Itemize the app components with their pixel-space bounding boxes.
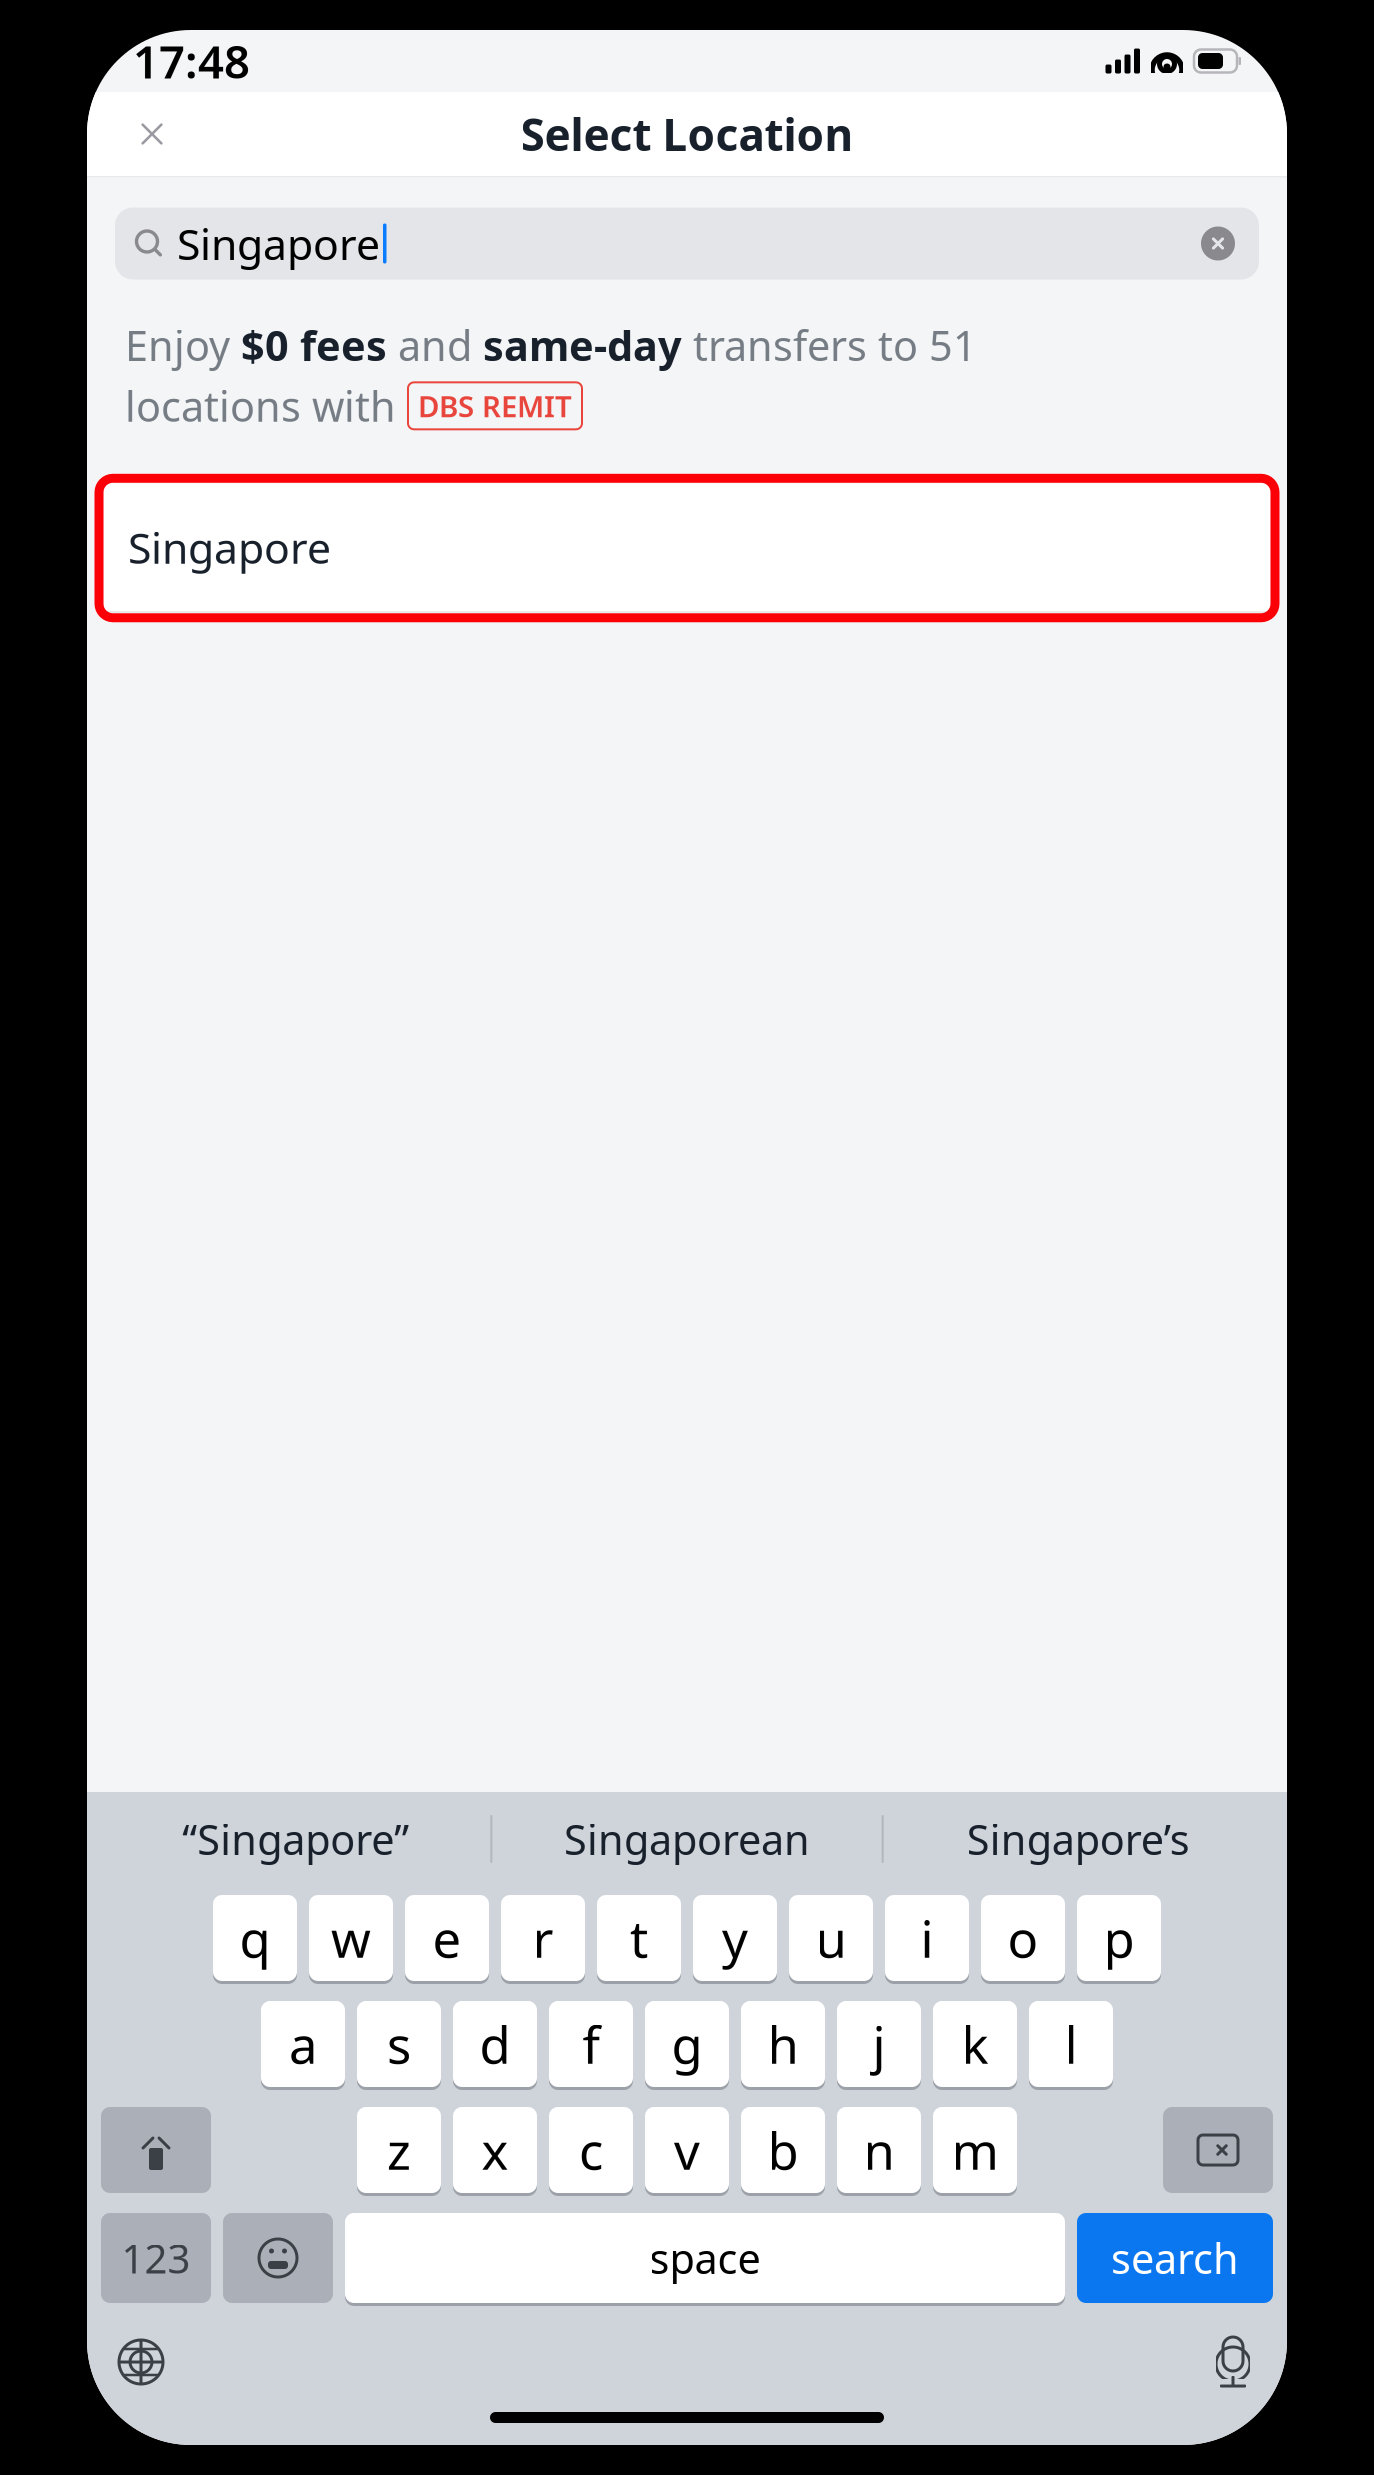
button[interactable]: f xyxy=(549,1998,633,2090)
staticText: d xyxy=(479,2010,510,2078)
staticText: DBS REMIT xyxy=(418,386,572,425)
button[interactable]: Singaporean xyxy=(492,1792,882,1886)
button[interactable]: u xyxy=(789,1892,873,1984)
button[interactable]: w xyxy=(309,1892,393,1984)
button[interactable]: o xyxy=(981,1892,1065,1984)
staticText: t xyxy=(630,1904,648,1972)
button[interactable]: g xyxy=(645,1998,729,2090)
staticText: Singaporean xyxy=(564,1812,810,1866)
button[interactable]: i xyxy=(885,1892,969,1984)
staticText: k xyxy=(961,2010,988,2078)
staticText: o xyxy=(1007,1904,1038,1972)
staticText: p xyxy=(1103,1904,1134,1972)
staticText: locations with xyxy=(125,378,396,433)
staticText: $0 fees xyxy=(241,317,387,372)
staticText: same-day xyxy=(483,317,682,372)
staticText: and xyxy=(387,317,483,372)
button[interactable]: n xyxy=(837,2104,921,2196)
staticText: 123 xyxy=(121,2231,190,2284)
button[interactable]: t xyxy=(597,1892,681,1984)
button[interactable]: 123 xyxy=(101,2210,211,2306)
button[interactable]: Shift xyxy=(101,2104,211,2196)
button[interactable]: b xyxy=(741,2104,825,2196)
staticText: g xyxy=(671,2010,702,2078)
staticText: x xyxy=(481,2116,508,2184)
staticText: a xyxy=(289,2010,317,2078)
staticText: Enjoy xyxy=(125,317,241,372)
button[interactable]: Singapore xyxy=(104,483,1270,613)
staticText: i xyxy=(920,1904,933,1972)
staticText: 17:48 xyxy=(133,31,250,91)
staticText: z xyxy=(387,2116,411,2184)
staticText: m xyxy=(951,2116,998,2184)
button[interactable]: j xyxy=(837,1998,921,2090)
staticText: space xyxy=(649,2231,760,2285)
staticText: u xyxy=(815,1904,846,1972)
button[interactable]: space xyxy=(345,2210,1065,2306)
staticText: c xyxy=(579,2116,603,2184)
staticText: transfers to 51 xyxy=(682,317,977,372)
button[interactable]: x xyxy=(453,2104,537,2196)
button[interactable]: Singapore’s xyxy=(884,1792,1273,1886)
button[interactable]: e xyxy=(405,1892,489,1984)
staticText: n xyxy=(863,2116,894,2184)
staticText: j xyxy=(872,2010,885,2078)
button[interactable]: Next keyboard xyxy=(101,2322,181,2402)
staticText: r xyxy=(532,1904,553,1972)
staticText: v xyxy=(674,2116,700,2184)
button[interactable]: Dictation xyxy=(1193,2322,1273,2402)
staticText: search xyxy=(1111,2231,1239,2285)
staticText: s xyxy=(387,2010,411,2078)
button[interactable]: l xyxy=(1029,1998,1113,2090)
button[interactable]: Close xyxy=(121,103,183,165)
button[interactable]: Emoji xyxy=(223,2210,333,2306)
staticText: w xyxy=(331,1904,371,1972)
button[interactable]: d xyxy=(453,1998,537,2090)
staticText: “Singapore” xyxy=(182,1812,409,1866)
staticText: Select Location xyxy=(520,105,853,163)
staticText: l xyxy=(1064,2010,1077,2078)
button[interactable]: y xyxy=(693,1892,777,1984)
staticText: e xyxy=(432,1904,461,1972)
staticText: Singapore xyxy=(177,215,380,272)
button[interactable]: k xyxy=(933,1998,1017,2090)
staticText: b xyxy=(767,2116,798,2184)
button[interactable]: p xyxy=(1077,1892,1161,1984)
staticText: y xyxy=(722,1904,748,1972)
staticText: f xyxy=(582,2010,599,2078)
button[interactable]: v xyxy=(645,2104,729,2196)
staticText: Singapore xyxy=(128,519,331,576)
button[interactable]: z xyxy=(357,2104,441,2196)
button[interactable]: a xyxy=(261,1998,345,2090)
staticText: q xyxy=(239,1904,270,1972)
button[interactable]: search xyxy=(1077,2210,1273,2306)
button[interactable]: q xyxy=(213,1892,297,1984)
button[interactable]: h xyxy=(741,1998,825,2090)
button[interactable]: r xyxy=(501,1892,585,1984)
button[interactable]: Clear text xyxy=(1187,212,1249,274)
staticText: h xyxy=(767,2010,798,2078)
button[interactable]: m xyxy=(933,2104,1017,2196)
button[interactable]: “Singapore” xyxy=(101,1792,490,1886)
staticText: Singapore’s xyxy=(967,1812,1190,1866)
button[interactable]: Delete xyxy=(1163,2104,1273,2196)
button[interactable]: c xyxy=(549,2104,633,2196)
button[interactable]: s xyxy=(357,1998,441,2090)
